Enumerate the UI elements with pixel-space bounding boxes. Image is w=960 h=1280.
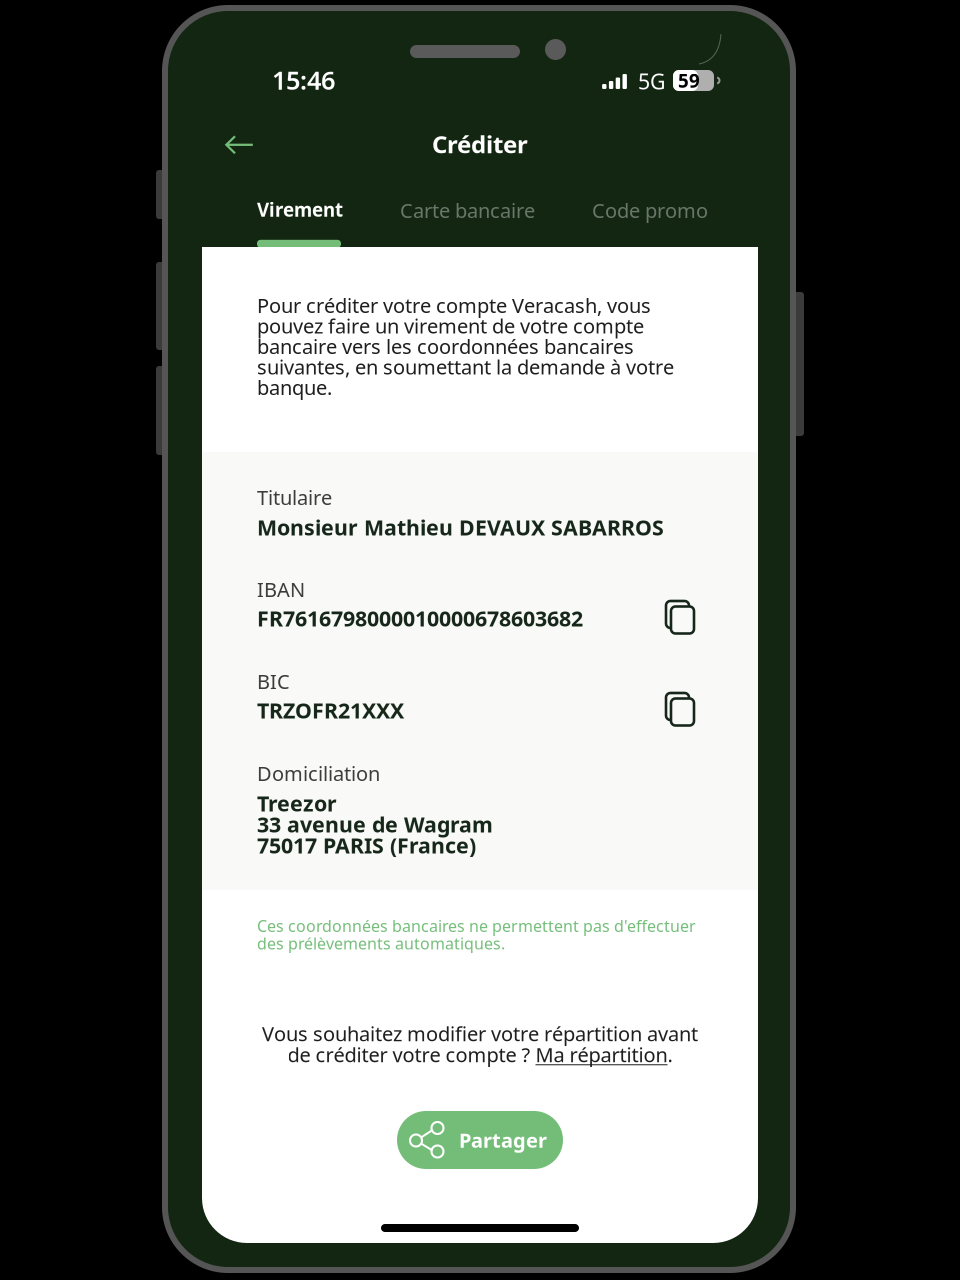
staticText: pouvez faire un virement de votre compte [257,312,644,339]
staticText: Créditer [432,128,528,160]
staticText: des prélèvements automatiques. [257,933,505,954]
button[interactable]: Copier le BIC [666,693,703,726]
staticText: suivantes, en soumettant la demande à vo… [257,353,674,380]
staticText: 59 [678,68,700,93]
staticText: 75017 PARIS (France) [257,831,476,859]
staticText: 33 avenue de Wagram [257,810,493,838]
staticText: Monsieur Mathieu DEVAUX SABARROS [257,513,664,541]
staticText: Partager [459,1127,547,1153]
staticText: Pour créditer votre compte Veracash, vou… [257,292,651,319]
staticText: IBAN [257,576,305,603]
staticText: Vous souhaitez modifier votre répartitio… [262,1020,698,1047]
button[interactable]: Carte bancaire [400,197,533,250]
staticText: Domiciliation [257,760,380,787]
staticText: Treezor [257,789,337,817]
button[interactable]: Code promo [592,197,705,250]
button[interactable]: Virement [257,197,341,248]
staticText: Carte bancaire [400,197,535,224]
staticText: TRZOFR21XXX [257,696,404,724]
staticText: Ces coordonnées bancaires ne permettent … [257,915,696,936]
staticText: de créditer votre compte ? Ma répartitio… [287,1041,672,1068]
staticText: Virement [257,197,343,222]
staticText: bancaire vers les coordonnées bancaires [257,333,634,360]
staticText: Titulaire [257,484,332,511]
staticText: Code promo [592,197,708,224]
staticText: 15:46 [272,63,335,97]
button[interactable]: Partager [397,1111,563,1169]
staticText: banque. [257,374,332,401]
staticText: 5G [638,67,666,95]
staticText: FR7616798000010000678603682 [257,604,583,632]
button[interactable]: Copier l'IBAN [666,601,703,634]
staticText: BIC [257,668,290,695]
button[interactable]: Retour [210,123,269,167]
